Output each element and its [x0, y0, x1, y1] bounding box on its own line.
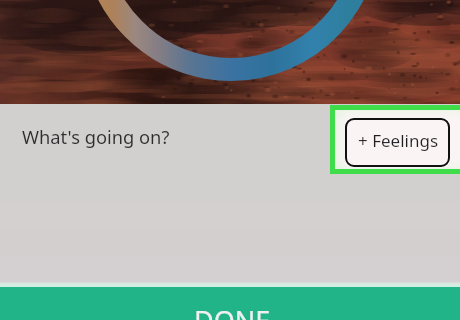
staticText: + Feelings	[358, 129, 439, 152]
staticText: What's going on?	[22, 124, 170, 149]
staticText: DONE	[194, 302, 271, 320]
button[interactable]: + Feelings	[345, 118, 450, 167]
button[interactable]: DONE	[0, 287, 460, 320]
